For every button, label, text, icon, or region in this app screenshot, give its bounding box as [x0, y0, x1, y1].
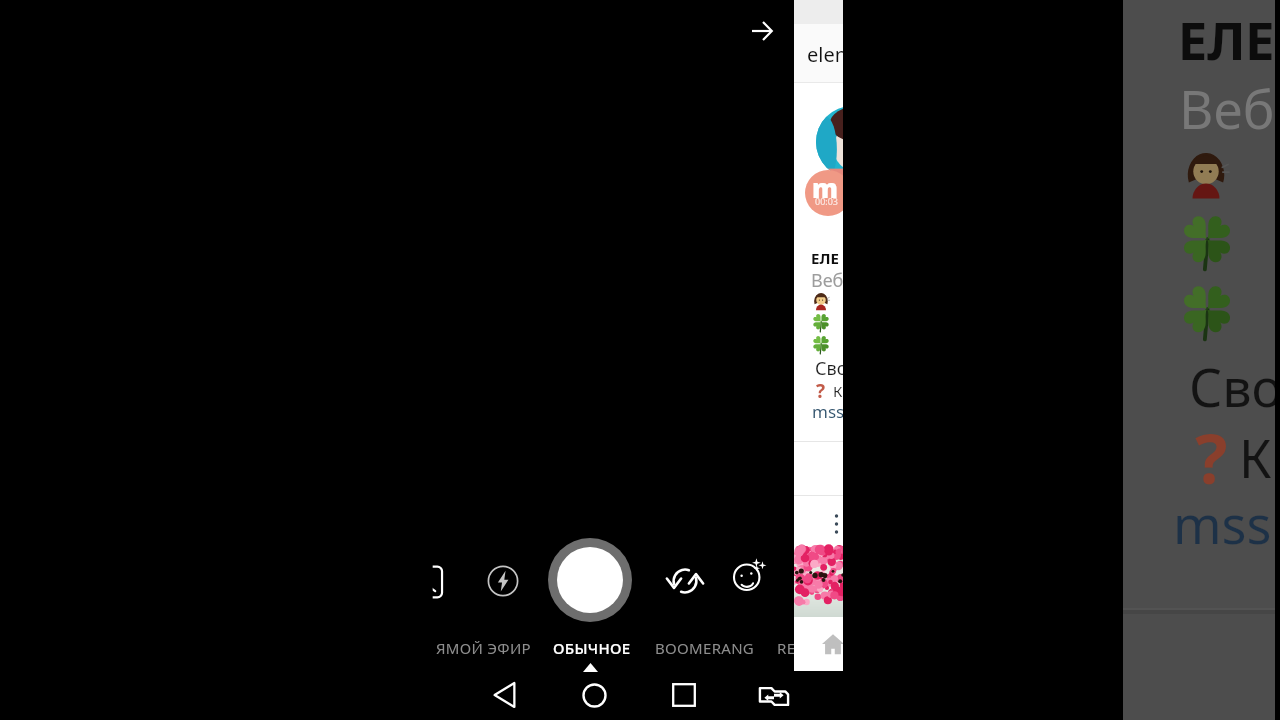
staticText: mss — [1173, 488, 1272, 559]
staticText: ? — [1195, 411, 1228, 504]
staticText: m — [812, 170, 839, 205]
button[interactable]: BOOMERANG — [655, 638, 755, 658]
button[interactable]: ЯМОЙ ЭФИР — [436, 638, 531, 658]
button[interactable]: Split screen — [754, 676, 794, 716]
button[interactable]: Gallery — [407, 560, 449, 602]
staticText: ? — [816, 378, 826, 404]
staticText: Сво — [1189, 351, 1275, 422]
button[interactable]: Face filters — [727, 553, 771, 597]
staticText: RE — [777, 638, 796, 658]
staticText: ОБЫЧНОЕ — [553, 638, 631, 658]
button[interactable]: RE — [777, 638, 796, 658]
button[interactable]: Next — [741, 10, 783, 52]
staticText: BOOMERANG — [655, 638, 755, 658]
staticText: mss — [812, 400, 843, 423]
staticText: 00:03 — [815, 195, 839, 207]
staticText: Веб- — [811, 268, 843, 293]
staticText: Сво — [815, 356, 843, 381]
button[interactable]: Take photo — [547, 537, 633, 623]
button[interactable]: Flash — [482, 560, 524, 602]
staticText: ЯМОЙ ЭФИР — [436, 638, 531, 658]
button[interactable]: Switch camera — [664, 560, 706, 602]
button[interactable] — [583, 663, 598, 672]
staticText: elen — [807, 41, 843, 68]
staticText: К — [833, 381, 843, 401]
staticText: ЕЛЕ — [811, 248, 839, 268]
button[interactable]: Home — [574, 675, 614, 715]
button[interactable]: Recents — [664, 675, 704, 715]
button[interactable]: Back — [485, 675, 525, 715]
staticText: К — [1239, 422, 1272, 493]
staticText: ЕЛЕ — [1178, 4, 1275, 75]
button[interactable]: ОБЫЧНОЕ — [553, 638, 631, 658]
staticText: Веб- — [1179, 72, 1275, 144]
